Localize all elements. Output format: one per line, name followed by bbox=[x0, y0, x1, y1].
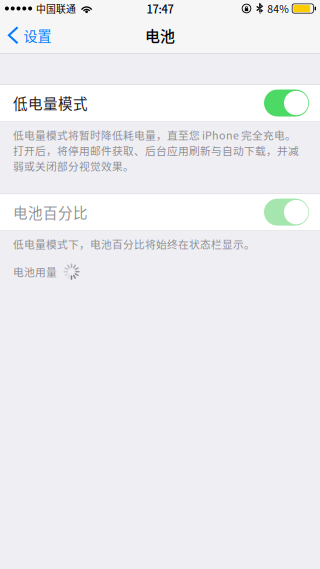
staticText: 电池 bbox=[145, 24, 175, 46]
staticText: 低电量模式将暂时降低耗电量，直至您 iPhone 完全充电。打开后，将停用邮件获… bbox=[13, 127, 299, 174]
staticText: 设置 bbox=[23, 25, 51, 45]
staticText: 中国联通 bbox=[36, 1, 76, 16]
staticText: 低电量模式 bbox=[13, 92, 88, 113]
button[interactable]: 电池百分比 bbox=[0, 194, 320, 230]
staticText: 17:47 bbox=[146, 0, 173, 17]
button[interactable]: 低电量模式 bbox=[0, 85, 320, 121]
staticText: 电池百分比 bbox=[13, 202, 88, 223]
staticText: 低电量模式下，电池百分比将始终在状态栏显示。 bbox=[13, 236, 255, 252]
staticText: 电池用量 bbox=[13, 264, 57, 279]
staticText: 84% bbox=[267, 1, 289, 16]
button[interactable]: 设置 bbox=[0, 20, 61, 51]
